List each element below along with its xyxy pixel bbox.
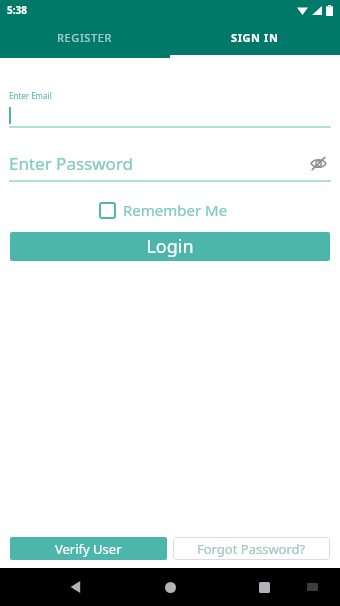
button[interactable]: Show password bbox=[305, 150, 331, 176]
staticText: Enter Email bbox=[9, 90, 52, 101]
staticText: Enter Password bbox=[9, 152, 134, 175]
staticText: Forgot Password? bbox=[197, 540, 306, 558]
staticText: Verify User bbox=[55, 540, 122, 558]
button[interactable]: Recent apps bbox=[252, 575, 276, 599]
button[interactable]: SIGN IN bbox=[170, 20, 340, 55]
button[interactable]: REGISTER bbox=[0, 20, 170, 55]
staticText: 5:38 bbox=[7, 3, 27, 17]
button[interactable]: Enter Email bbox=[9, 90, 331, 128]
staticText: Login bbox=[146, 234, 194, 259]
button[interactable]: Home bbox=[158, 575, 182, 599]
button[interactable]: Verify User bbox=[10, 537, 167, 560]
button[interactable]: Keyboard bbox=[302, 577, 322, 597]
staticText: Remember Me bbox=[123, 200, 228, 220]
staticText: SIGN IN bbox=[231, 30, 279, 45]
button[interactable]: Back bbox=[64, 575, 88, 599]
button[interactable]: Enter Password bbox=[9, 150, 331, 182]
button[interactable]: Forgot Password? bbox=[173, 537, 330, 560]
button[interactable]: Remember Me bbox=[100, 200, 340, 220]
staticText: REGISTER bbox=[57, 30, 113, 45]
button[interactable]: Login bbox=[10, 232, 330, 261]
